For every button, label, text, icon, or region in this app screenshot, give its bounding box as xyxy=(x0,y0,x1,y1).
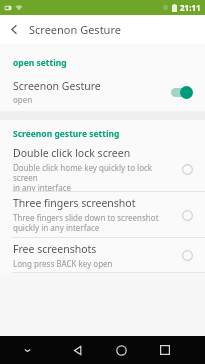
staticText: Screenon Gesture xyxy=(29,22,121,37)
staticText: Screenon gesture setting xyxy=(13,128,120,140)
button[interactable]: Free screenshots xyxy=(0,238,205,272)
staticText: Three fingers slide down to screenshot q… xyxy=(13,212,159,233)
staticText: open setting xyxy=(13,57,67,69)
button[interactable]: Free screenshots xyxy=(178,246,196,264)
staticText: Double click lock screen xyxy=(13,146,131,160)
button[interactable]: Three fingers screenshot xyxy=(178,206,196,224)
staticText: Long press BACK key open xyxy=(13,258,113,269)
button[interactable]: Double click lock screen xyxy=(178,160,196,178)
staticText: Screenon Gesture xyxy=(13,79,101,93)
button[interactable]: Home xyxy=(99,336,143,364)
staticText: 21:11 xyxy=(180,2,201,13)
staticText: open xyxy=(13,94,33,105)
button[interactable]: Double click lock screen xyxy=(0,146,205,191)
staticText: Three fingers screenshot xyxy=(13,196,136,210)
staticText: Free screenshots xyxy=(13,242,97,256)
button[interactable]: Hide navigation bar xyxy=(0,336,55,364)
button[interactable]: Screenon Gesture xyxy=(0,76,205,107)
button[interactable]: Back xyxy=(0,15,29,44)
button[interactable]: Three fingers screenshot xyxy=(0,192,205,237)
button[interactable]: Recent apps xyxy=(143,336,187,364)
button[interactable]: Back xyxy=(55,336,99,364)
staticText: Double click home key quickly to lock sc… xyxy=(13,162,178,191)
